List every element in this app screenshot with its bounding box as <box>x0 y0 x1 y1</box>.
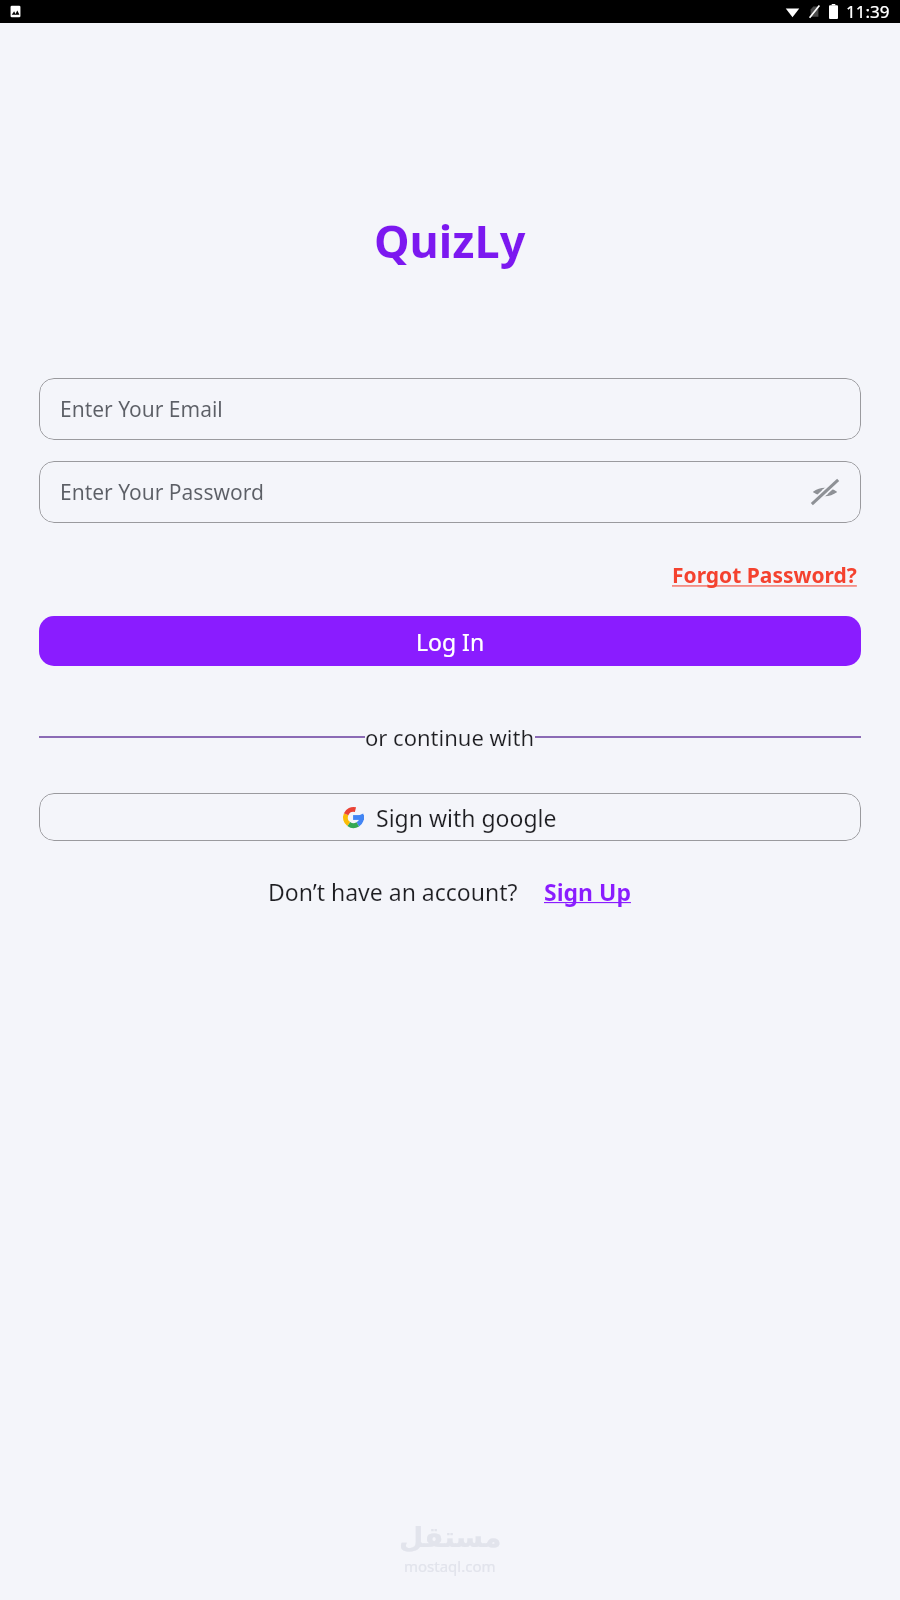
button[interactable]: Forgot Password? <box>668 559 861 592</box>
button[interactable]: Enter Your Email <box>39 378 861 440</box>
staticText: 11:39 <box>846 0 890 23</box>
staticText: Log In <box>416 626 485 657</box>
button[interactable]: Enter Your Password <box>39 461 861 523</box>
button[interactable]: Sign with google <box>39 793 861 841</box>
staticText: Enter Your Password <box>60 478 264 507</box>
staticText: Enter Your Email <box>60 395 223 424</box>
button[interactable]: Sign Up <box>542 874 633 909</box>
staticText: Sign Up <box>544 876 631 907</box>
staticText: or continue with <box>365 722 535 752</box>
button[interactable]: Log In <box>39 616 861 666</box>
staticText: Forgot Password? <box>672 561 857 590</box>
staticText: mostaql.com <box>404 1556 496 1576</box>
staticText: مستقل <box>399 1521 502 1554</box>
staticText: Don’t have an account? <box>268 876 518 907</box>
staticText: Sign with google <box>376 802 557 833</box>
staticText: QuizLy <box>374 210 526 271</box>
button[interactable]: Show password <box>805 472 845 512</box>
